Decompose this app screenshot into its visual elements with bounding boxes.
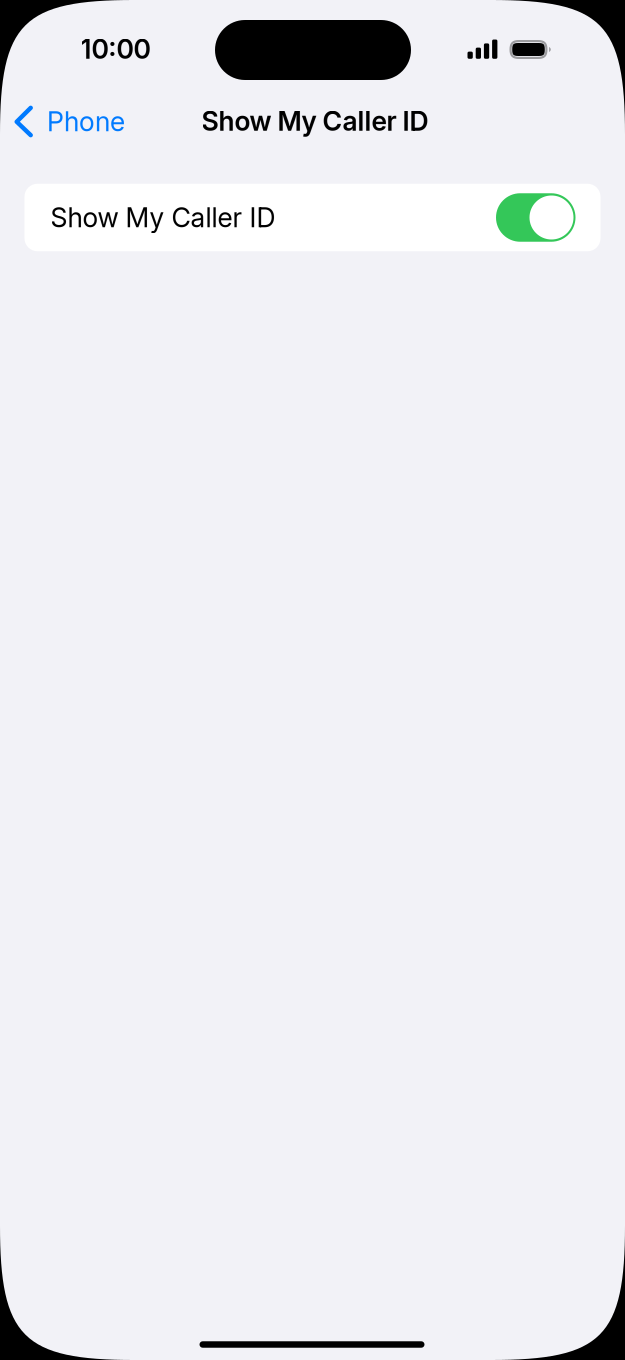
button[interactable]: Back to Phone [14,97,135,146]
staticText: Show My Caller ID [201,105,428,137]
staticText: Phone [47,105,125,138]
staticText: 10:00 [80,33,150,65]
button[interactable]: 1 [24,184,600,251]
staticText: Show My Caller ID [50,201,275,234]
